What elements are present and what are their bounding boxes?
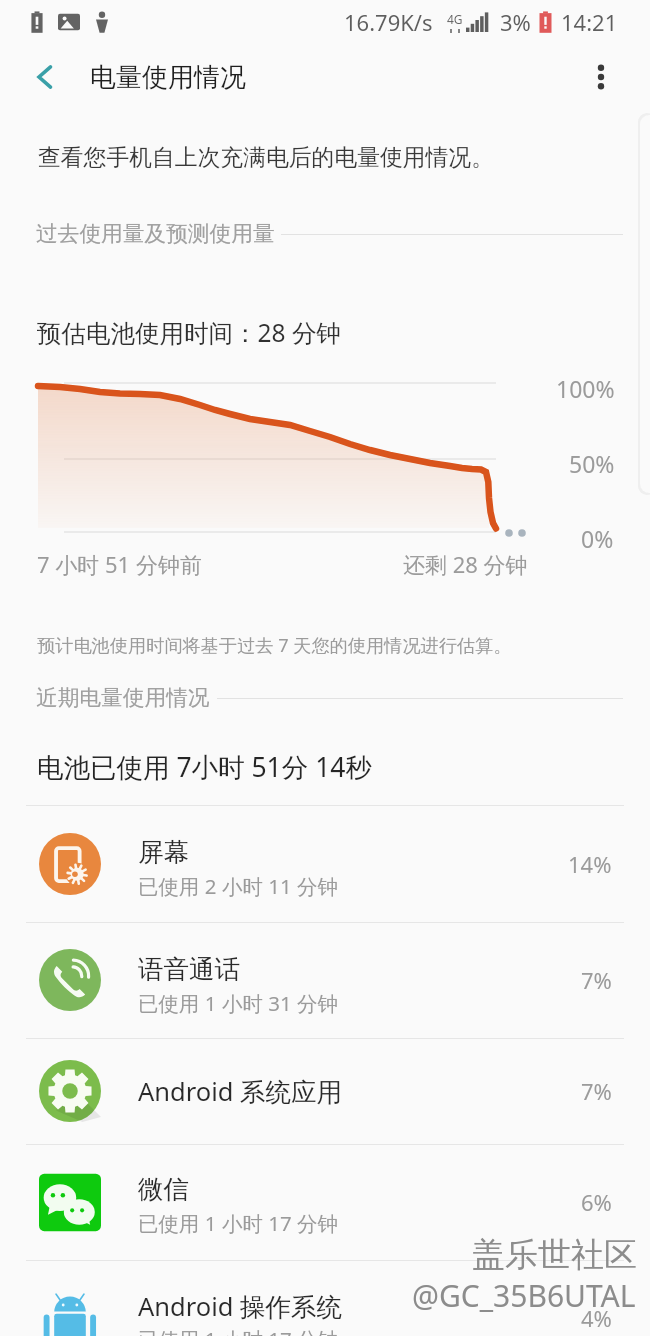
staticText: 100% bbox=[556, 373, 615, 404]
button[interactable]: Android 操作系统 bbox=[0, 1260, 650, 1336]
staticText: 已使用 1 小时 17 分钟 bbox=[138, 1325, 338, 1336]
staticText: @GC_35B6UTAL bbox=[412, 1275, 636, 1316]
button[interactable]: Back bbox=[22, 54, 68, 100]
staticText: 14:21 bbox=[561, 7, 618, 37]
staticText: 4G bbox=[447, 11, 463, 27]
staticText: 预估电池使用时间：28 分钟 bbox=[37, 316, 341, 349]
staticText: 屏幕 bbox=[138, 836, 189, 868]
button[interactable]: 屏幕 bbox=[0, 805, 650, 922]
button[interactable]: Android 系统应用 bbox=[0, 1038, 650, 1144]
staticText: Android 系统应用 bbox=[138, 1074, 343, 1109]
staticText: 7% bbox=[581, 965, 612, 995]
staticText: 6% bbox=[581, 1187, 612, 1217]
staticText: 语音通话 bbox=[138, 953, 240, 985]
button[interactable]: More options bbox=[578, 54, 624, 100]
staticText: 14% bbox=[568, 849, 612, 879]
staticText: 已使用 1 小时 17 分钟 bbox=[138, 1209, 338, 1237]
staticText: 电池已使用 7小时 51分 14秒 bbox=[37, 749, 372, 785]
staticText: 电量使用情况 bbox=[90, 61, 246, 94]
staticText: 50% bbox=[569, 448, 615, 479]
staticText: 0% bbox=[581, 523, 614, 554]
staticText: 近期电量使用情况 bbox=[36, 684, 210, 711]
staticText: 已使用 1 小时 31 分钟 bbox=[138, 989, 338, 1017]
staticText: 查看您手机自上次充满电后的电量使用情况。 bbox=[38, 143, 494, 172]
button[interactable]: 微信 bbox=[0, 1144, 650, 1260]
staticText: 还剩 28 分钟 bbox=[403, 549, 528, 579]
staticText: 4% bbox=[581, 1303, 612, 1333]
staticText: 7% bbox=[581, 1076, 612, 1106]
staticText: 过去使用量及预测使用量 bbox=[36, 220, 275, 247]
button[interactable]: 语音通话 bbox=[0, 922, 650, 1038]
staticText: 7 小时 51 分钟前 bbox=[37, 549, 202, 579]
staticText: 16.79K/s bbox=[344, 7, 433, 37]
staticText: Android 操作系统 bbox=[138, 1289, 343, 1324]
staticText: 盖乐世社区 bbox=[472, 1234, 637, 1276]
staticText: 预计电池使用时间将基于过去 7 天您的使用情况进行估算。 bbox=[37, 633, 512, 658]
staticText: 微信 bbox=[138, 1173, 189, 1205]
staticText: 3% bbox=[500, 7, 531, 37]
staticText: 已使用 2 小时 11 分钟 bbox=[138, 872, 338, 900]
